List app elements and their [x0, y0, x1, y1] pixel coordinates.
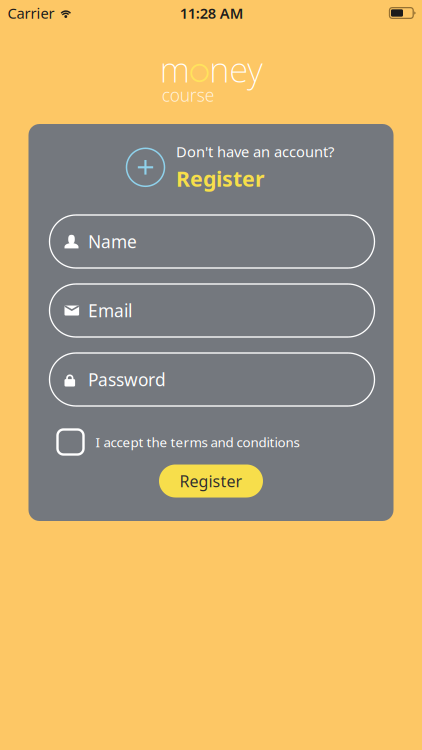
- button[interactable]: Name: [49, 215, 374, 268]
- staticText: I accept the terms and conditions: [95, 433, 299, 451]
- staticText: Email: [88, 299, 132, 322]
- staticText: course: [162, 83, 215, 106]
- staticText: 11:28 AM: [180, 3, 244, 23]
- button[interactable]: Email: [49, 284, 374, 337]
- button[interactable]: Don't have an account?: [126, 143, 393, 191]
- button[interactable]: Register: [159, 464, 263, 497]
- staticText: Carrier: [7, 3, 54, 23]
- button[interactable]: I accept the terms and conditions: [57, 426, 303, 457]
- staticText: Password: [88, 368, 166, 391]
- button[interactable]: Password: [49, 353, 374, 406]
- staticText: Name: [88, 230, 137, 253]
- staticText: ney: [209, 46, 262, 92]
- staticText: Register: [176, 164, 265, 193]
- staticText: Don't have an account?: [176, 142, 334, 161]
- staticText: m: [160, 46, 190, 92]
- staticText: Register: [179, 470, 242, 492]
